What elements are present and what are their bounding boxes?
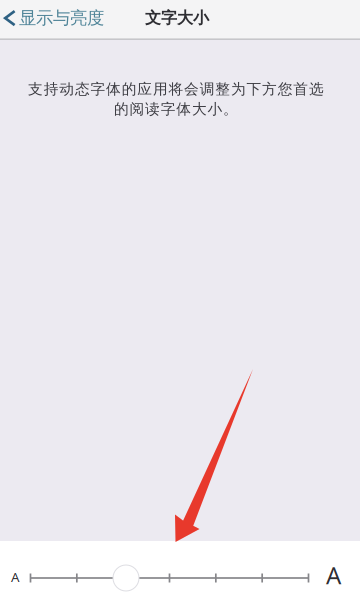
staticText: 文字大小	[145, 8, 209, 28]
staticText: 显示与亮度	[19, 7, 104, 29]
staticText: 支持动态字体的应用将会调整为下方您首选	[28, 80, 324, 98]
button[interactable]: 文字大小	[113, 565, 139, 591]
staticText: A	[11, 568, 20, 586]
staticText: A	[326, 559, 341, 591]
staticText: 的阅读字体大小。	[114, 100, 238, 118]
button[interactable]: 显示与亮度	[0, 0, 160, 36]
